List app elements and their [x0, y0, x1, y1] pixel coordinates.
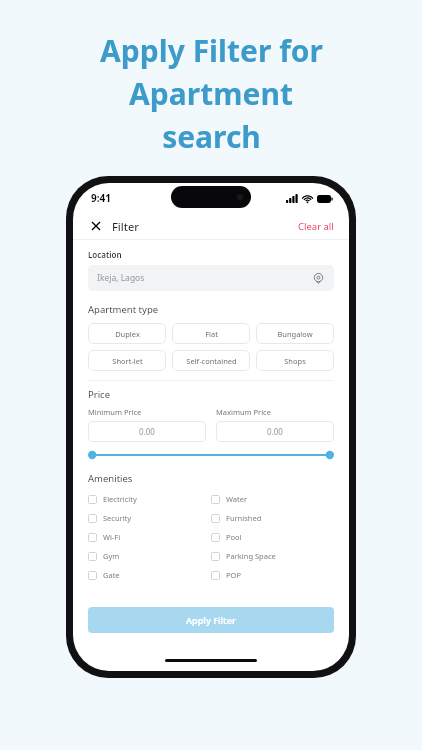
- staticText: Shops: [284, 356, 306, 366]
- button[interactable]: 0.00: [216, 421, 334, 442]
- staticText: Ikeja, Lagos: [97, 272, 145, 284]
- staticText: Pool: [226, 532, 242, 542]
- staticText: Parking Space: [226, 551, 276, 561]
- button[interactable]: Ikeja, Lagos: [88, 265, 334, 291]
- button[interactable]: Parking Space: [211, 548, 334, 564]
- staticText: Gate: [103, 570, 120, 580]
- button[interactable]: Wi-Fi: [88, 529, 211, 545]
- staticText: 0.00: [267, 426, 283, 437]
- staticText: Location: [88, 249, 122, 260]
- button[interactable]: 0.00: [88, 421, 206, 442]
- staticText: Short-let: [112, 356, 143, 366]
- staticText: Duplex: [115, 329, 140, 339]
- staticText: POP: [226, 570, 241, 580]
- button[interactable]: Apply Filter: [88, 607, 334, 633]
- staticText: Furnished: [226, 513, 262, 523]
- button[interactable]: Bungalow: [256, 323, 334, 344]
- button[interactable]: Furnished: [211, 510, 334, 526]
- staticText: Apply Filter for: [100, 30, 323, 71]
- staticText: Self-contained: [186, 356, 237, 366]
- button[interactable]: Gym: [88, 548, 211, 564]
- button[interactable]: Shops: [256, 350, 334, 371]
- button[interactable]: Gate: [88, 567, 211, 583]
- button[interactable]: Price range slider: [88, 449, 334, 461]
- button[interactable]: Clear all: [298, 220, 334, 233]
- button[interactable]: Security: [88, 510, 211, 526]
- staticText: Price: [88, 388, 111, 401]
- button[interactable]: Short-let: [88, 350, 166, 371]
- staticText: Flat: [205, 329, 218, 339]
- staticText: Electricity: [103, 494, 137, 504]
- staticText: Filter: [112, 219, 139, 234]
- staticText: Gym: [103, 551, 120, 561]
- button[interactable]: Pool: [211, 529, 334, 545]
- staticText: Bungalow: [277, 329, 313, 339]
- staticText: Apartment type: [88, 303, 159, 316]
- staticText: Water: [226, 494, 248, 504]
- button[interactable]: Flat: [172, 323, 250, 344]
- button[interactable]: Duplex: [88, 323, 166, 344]
- button[interactable]: Self-contained: [172, 350, 250, 371]
- staticText: Minimum Price: [88, 407, 142, 417]
- staticText: Apartment: [129, 73, 293, 114]
- button[interactable]: Water: [211, 491, 334, 507]
- staticText: Maximum Price: [216, 407, 271, 417]
- staticText: 9:41: [91, 191, 111, 205]
- staticText: Wi-Fi: [103, 532, 121, 542]
- staticText: 0.00: [139, 426, 155, 437]
- staticText: Apply Filter: [186, 614, 236, 626]
- button[interactable]: Close: [88, 218, 104, 234]
- button[interactable]: Electricity: [88, 491, 211, 507]
- staticText: Amenities: [88, 472, 133, 485]
- staticText: Security: [103, 513, 132, 523]
- staticText: Clear all: [298, 220, 334, 233]
- button[interactable]: POP: [211, 567, 334, 583]
- staticText: search: [162, 116, 261, 157]
- other: Use current location: [312, 272, 325, 285]
